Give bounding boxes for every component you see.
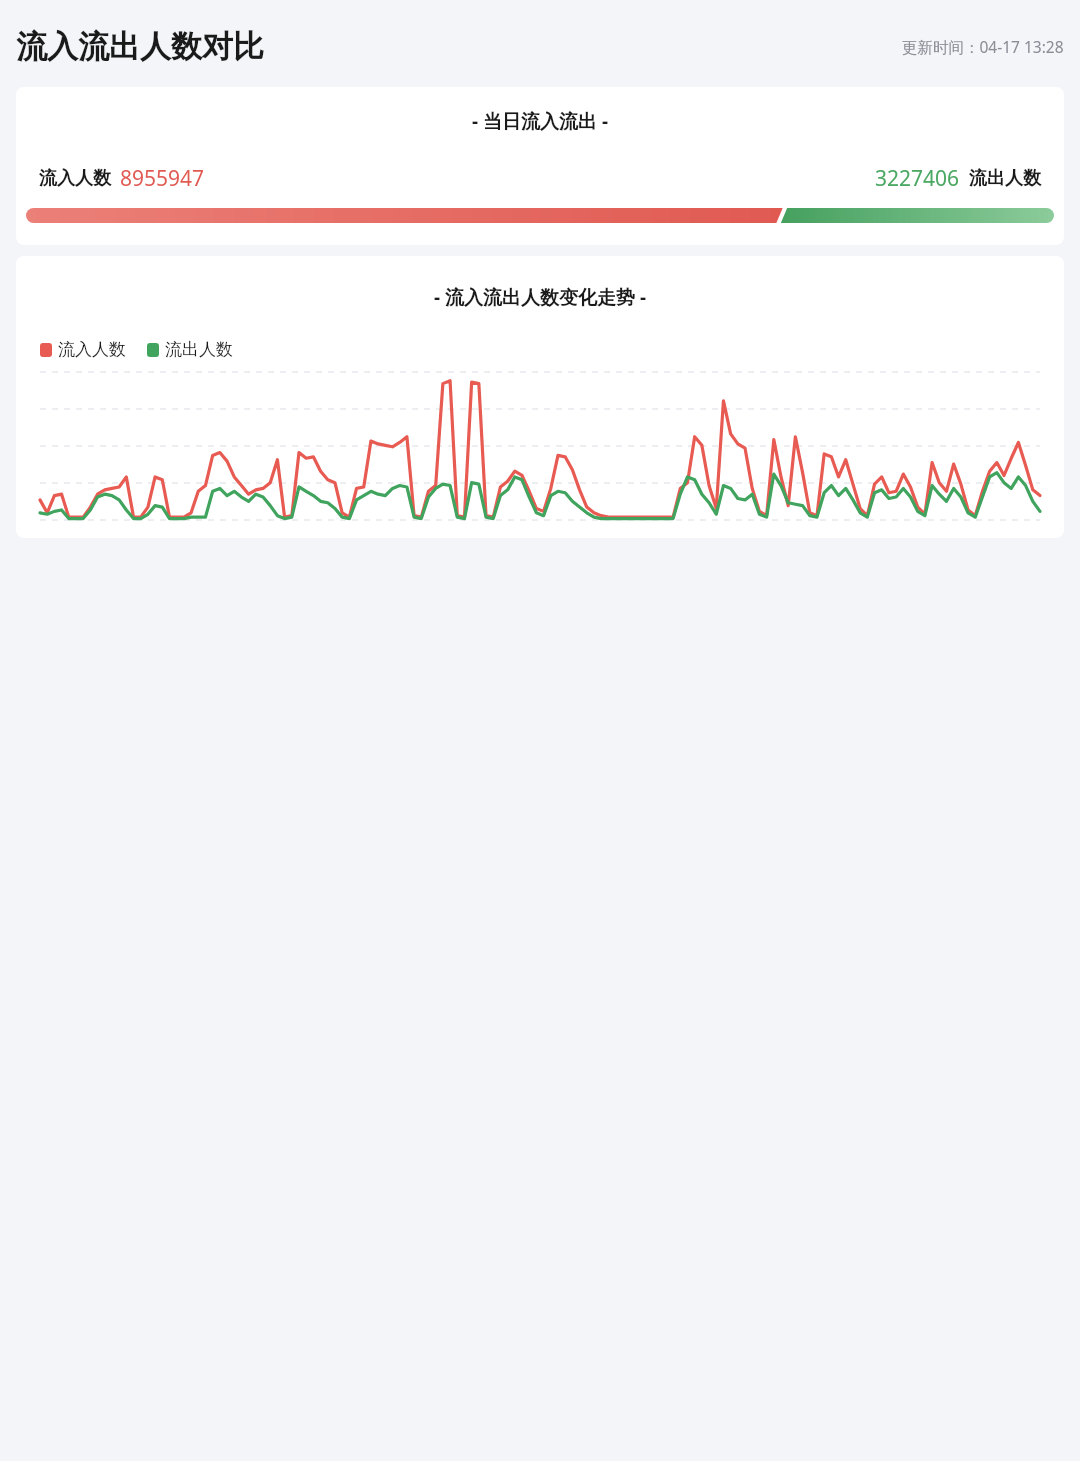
- staticText: 流出人数: [165, 339, 233, 360]
- staticText: - 当日流入流出 -: [16, 108, 1064, 134]
- staticText: 更新时间：04-17 13:28: [902, 36, 1064, 57]
- staticText: 8955947: [120, 164, 205, 193]
- staticText: 流入人数: [58, 339, 126, 360]
- button[interactable]: - 当日流入流出 -: [16, 87, 1064, 245]
- button[interactable]: - 流入流出人数变化走势 -: [16, 256, 1064, 538]
- staticText: 流出人数: [969, 167, 1041, 190]
- staticText: - 流入流出人数变化走势 -: [16, 284, 1064, 310]
- staticText: 3227406: [875, 164, 960, 193]
- staticText: 流入流出人数对比: [16, 27, 264, 66]
- staticText: 流入人数: [39, 167, 111, 190]
